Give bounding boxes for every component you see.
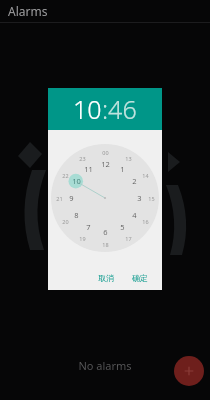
staticText: 19 [79, 235, 86, 242]
staticText: 11 [84, 164, 93, 174]
staticText: 17 [125, 235, 132, 242]
staticText: 22 [62, 172, 69, 179]
staticText: 3 [137, 193, 142, 203]
staticText: 10 [72, 176, 81, 186]
staticText: 14 [142, 172, 149, 179]
staticText: 5 [120, 222, 125, 232]
staticText: 确定 [132, 273, 148, 283]
staticText: 12 [101, 159, 110, 169]
staticText: 00 [102, 149, 109, 156]
staticText: 21 [56, 195, 63, 202]
staticText: 9 [69, 193, 74, 203]
staticText: 2 [132, 176, 137, 186]
staticText: 13 [125, 155, 132, 162]
staticText: 1 [120, 164, 125, 174]
staticText: 18 [102, 241, 109, 248]
staticText: Alarms [8, 3, 48, 19]
button[interactable]: 确定 [126, 270, 154, 286]
staticText: 16 [142, 218, 149, 225]
button[interactable]: :46 [102, 92, 137, 126]
staticText: No alarms [0, 358, 210, 373]
staticText: 6 [103, 227, 108, 237]
staticText: 20 [62, 218, 69, 225]
button[interactable]: 取消 [92, 270, 120, 286]
button[interactable]: Add alarm [174, 356, 204, 386]
staticText: 15 [148, 195, 155, 202]
staticText: 8 [74, 210, 79, 220]
staticText: 取消 [98, 273, 114, 283]
staticText: 4 [132, 210, 137, 220]
staticText: 23 [79, 155, 86, 162]
staticText: 7 [86, 222, 91, 232]
button[interactable]: 10 [73, 92, 102, 126]
